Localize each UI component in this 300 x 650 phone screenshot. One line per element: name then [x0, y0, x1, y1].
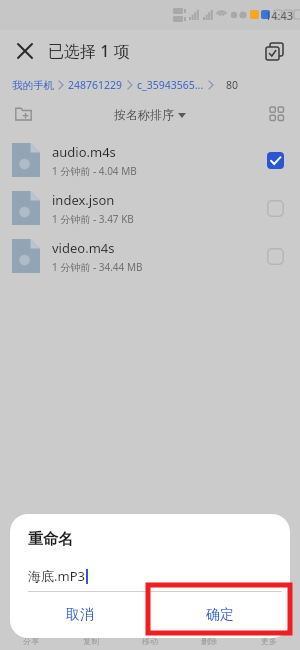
button[interactable]: 移动 — [122, 636, 178, 646]
staticText: 删除 — [201, 636, 217, 646]
staticText: 1 分钟前 - 34.44 MB — [52, 260, 143, 274]
button[interactable]: 关闭 — [12, 38, 38, 64]
staticText: index.json — [52, 191, 115, 209]
staticText: 248761229 — [68, 78, 123, 92]
button[interactable]: 更多 — [241, 636, 297, 646]
staticText: 海底.mP3 — [28, 567, 85, 585]
button[interactable]: 按名称排序 — [114, 107, 186, 122]
button[interactable]: 复制 — [63, 636, 119, 646]
staticText: 我的手机 — [12, 79, 54, 92]
staticText: 1 分钟前 - 3.47 KB — [52, 212, 134, 226]
button[interactable]: 确定 — [150, 592, 290, 638]
button[interactable]: 取消 — [10, 592, 150, 638]
staticText: video.m4s — [52, 239, 115, 257]
button[interactable]: video.m4s — [0, 232, 300, 280]
staticText: 分享 — [23, 636, 39, 646]
staticText: 已选择 1 项 — [48, 40, 130, 62]
button[interactable]: 未选中 — [262, 195, 288, 221]
button[interactable]: 分享 — [3, 636, 59, 646]
staticText: 移动 — [142, 636, 158, 646]
staticText: 14:43 — [265, 8, 294, 23]
staticText: 确定 — [206, 606, 234, 624]
staticText: 1 分钟前 - 4.04 MB — [52, 164, 137, 178]
button[interactable]: 切换视图 — [262, 99, 292, 129]
staticText: 更多 — [261, 636, 277, 646]
staticText: audio.m4s — [52, 143, 116, 161]
button[interactable]: 删除 — [181, 636, 237, 646]
staticText: 80 — [226, 78, 239, 92]
button[interactable]: c_35943565... — [137, 78, 204, 92]
staticText: 重命名 — [28, 530, 73, 549]
button[interactable]: index.json — [0, 184, 300, 232]
staticText: c_35943565... — [137, 78, 204, 92]
button[interactable]: 已选中 — [262, 147, 288, 173]
staticText: 复制 — [83, 636, 99, 646]
button[interactable]: 248761229 — [68, 78, 123, 92]
button[interactable]: 全选 — [260, 37, 288, 65]
button[interactable]: audio.m4s — [0, 136, 300, 184]
button[interactable]: 未选中 — [262, 243, 288, 269]
staticText: 按名称排序 — [114, 107, 174, 122]
button[interactable]: 新建文件夹 — [8, 99, 38, 129]
button[interactable]: 我的手机 — [12, 79, 54, 92]
staticText: 取消 — [66, 606, 94, 624]
